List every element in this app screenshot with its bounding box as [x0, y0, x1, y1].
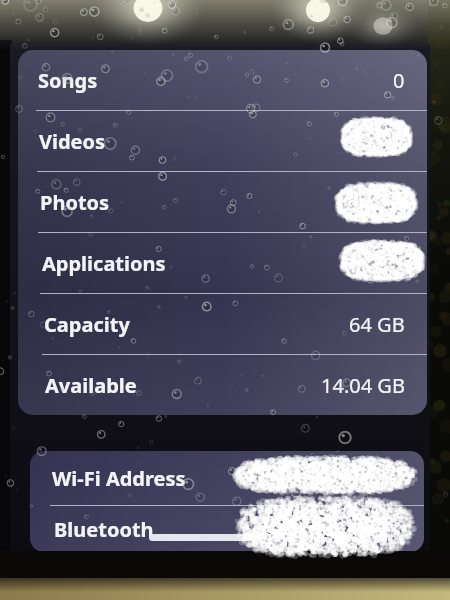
button[interactable]: Wi-Fi Address	[30, 451, 424, 506]
staticText: 0	[393, 67, 405, 94]
staticText: Songs	[38, 67, 98, 94]
staticText: Capacity	[44, 311, 130, 338]
button[interactable]: Songs	[18, 50, 427, 111]
button[interactable]: Available	[18, 355, 427, 415]
staticText: 14.04 GB	[321, 372, 405, 399]
staticText: Wi-Fi Address	[52, 465, 186, 492]
button[interactable]: Applications	[18, 233, 427, 294]
button[interactable]: Photos	[18, 172, 427, 233]
staticText: Photos	[40, 189, 110, 216]
button[interactable]: Capacity	[18, 294, 427, 355]
button[interactable]: Videos	[18, 111, 427, 172]
staticText: Bluetooth	[54, 516, 154, 543]
staticText: Videos	[39, 128, 106, 155]
button[interactable]: Bluetooth	[30, 506, 424, 552]
staticText: 64 GB	[349, 311, 405, 338]
staticText: Applications	[42, 250, 166, 277]
staticText: Available	[45, 372, 137, 399]
